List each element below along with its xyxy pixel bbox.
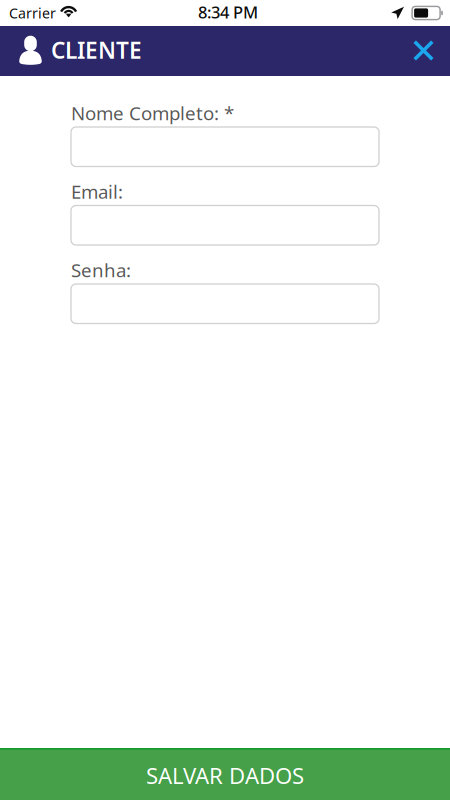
button[interactable]: SALVAR DADOS [0,748,450,800]
staticText: Email: [71,179,123,204]
staticText: 8:34 PM [198,1,258,23]
button[interactable] [71,127,379,166]
staticText: SALVAR DADOS [146,760,304,790]
button[interactable] [71,284,379,323]
staticText: Senha: [71,258,131,282]
staticText: Carrier [9,3,56,23]
staticText: Nome Completo: * [71,101,234,125]
button[interactable] [71,205,379,245]
button[interactable]: Close [405,32,442,69]
staticText: CLIENTE [51,35,142,65]
